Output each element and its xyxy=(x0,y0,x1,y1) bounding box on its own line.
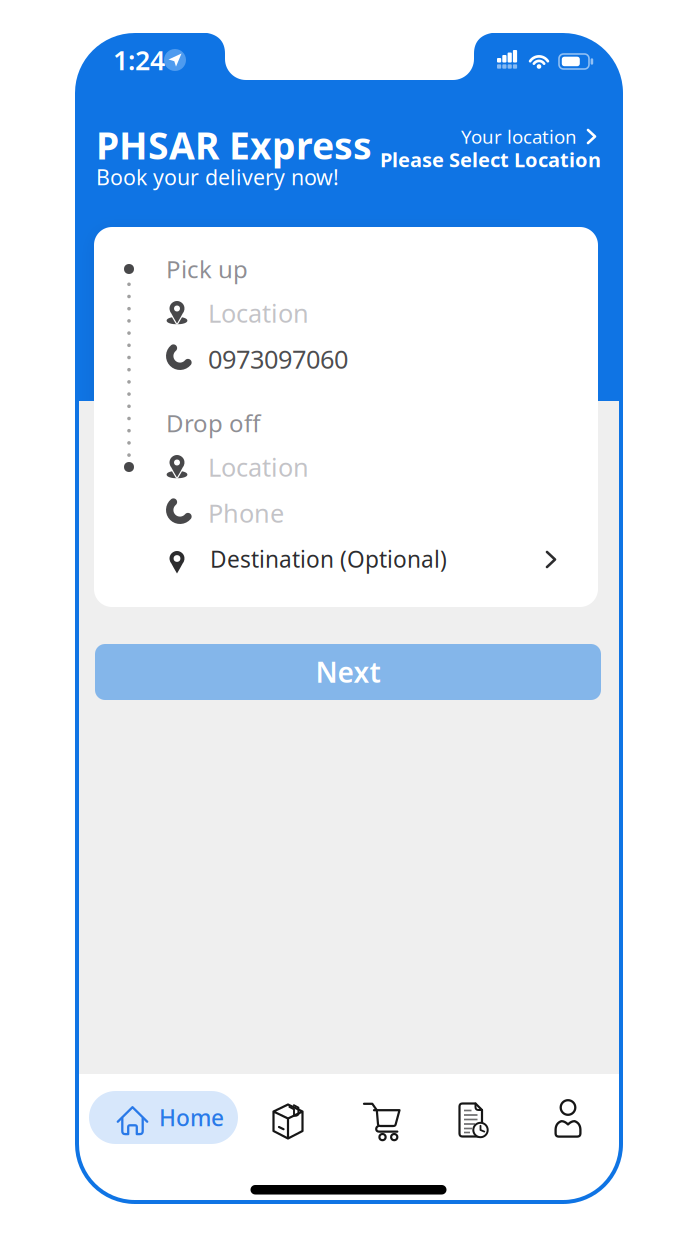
staticText: Book your delivery now! xyxy=(96,163,339,191)
button[interactable]: Your location xyxy=(311,116,601,180)
staticText: Phone xyxy=(208,496,284,530)
staticText: Home xyxy=(159,1102,224,1132)
staticText: 0973097060 xyxy=(208,342,348,376)
button[interactable]: Cart xyxy=(352,1089,412,1149)
staticText: Please Select Location xyxy=(380,146,601,173)
staticText: Pick up xyxy=(166,253,248,285)
staticText: 1:24 xyxy=(113,42,165,78)
staticText: Location xyxy=(208,296,309,330)
button[interactable]: Order history xyxy=(442,1089,502,1149)
button[interactable]: Destination (Optional) xyxy=(94,536,598,584)
staticText: Drop off xyxy=(166,407,261,439)
button[interactable]: Home xyxy=(89,1091,238,1144)
staticText: PHSAR Express xyxy=(96,120,372,170)
button[interactable]: Next xyxy=(95,644,601,700)
staticText: Your location xyxy=(461,124,577,149)
staticText: Next xyxy=(315,653,380,691)
button[interactable]: Profile xyxy=(538,1089,598,1149)
staticText: Location xyxy=(208,450,309,484)
staticText: Destination (Optional) xyxy=(210,544,447,574)
button[interactable]: Packages xyxy=(258,1089,318,1149)
